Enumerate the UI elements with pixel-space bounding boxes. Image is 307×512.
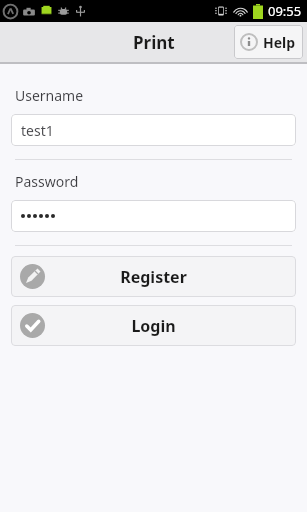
- button[interactable]: [11, 200, 296, 232]
- staticText: Help: [263, 33, 296, 52]
- staticText: test1: [21, 121, 54, 140]
- staticText: Username: [15, 86, 84, 105]
- button[interactable]: Login: [11, 305, 296, 346]
- staticText: Password: [15, 172, 79, 191]
- staticText: Login: [131, 315, 176, 337]
- staticText: Register: [120, 266, 187, 288]
- button[interactable]: Help: [234, 25, 303, 59]
- staticText: Print: [133, 31, 175, 54]
- button[interactable]: test1: [11, 114, 296, 146]
- button[interactable]: Register: [11, 256, 296, 297]
- staticText: 09:55: [268, 2, 302, 20]
